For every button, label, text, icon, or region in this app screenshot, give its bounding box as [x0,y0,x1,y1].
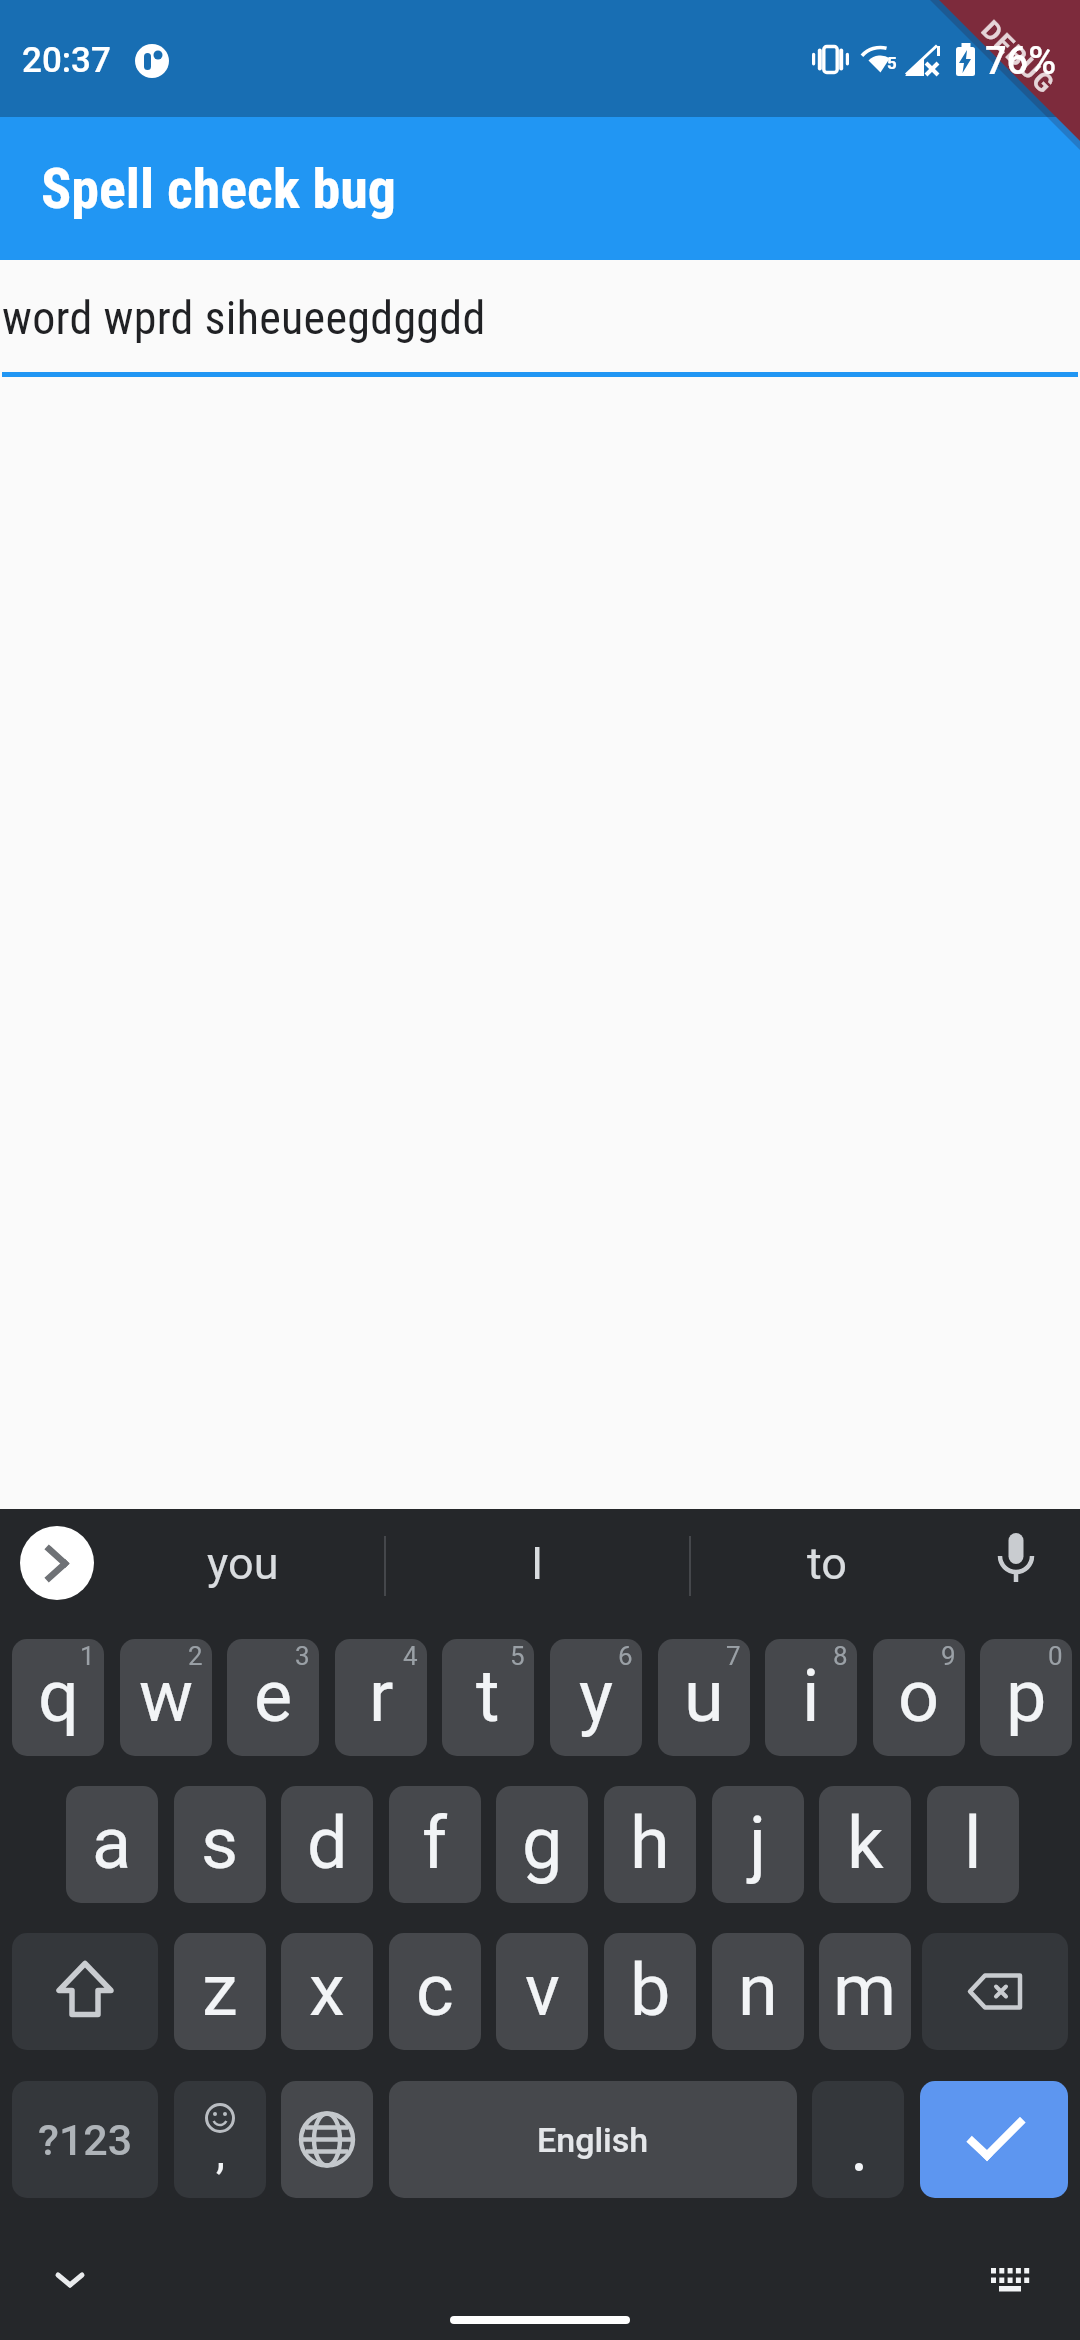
button[interactable] [922,1933,1068,2050]
staticText: a [92,1801,132,1885]
button[interactable]: w [120,1639,212,1756]
staticText: 8 [833,1641,848,1671]
staticText: c [416,1948,454,2032]
staticText: s [201,1801,239,1885]
staticText: n [738,1948,778,2032]
staticText: , [216,2125,226,2179]
staticText: 4 [403,1641,418,1671]
button[interactable]: v [496,1933,588,2050]
button[interactable] [920,2081,1068,2198]
button[interactable]: x [281,1933,373,2050]
staticText: e [254,1654,293,1738]
button[interactable]: l [927,1786,1019,1903]
button[interactable]: ?123 [12,2081,158,2198]
button[interactable] [812,2081,904,2198]
staticText: 2 [188,1641,203,1671]
staticText: g [522,1801,563,1885]
staticText: you [207,1537,279,1590]
staticText: Spell check bug [41,156,397,222]
staticText: x [309,1948,345,2032]
staticText: ?123 [38,2115,133,2165]
button[interactable]: to [717,1530,937,1596]
button[interactable]: h [604,1786,696,1903]
button[interactable]: , [174,2081,266,2198]
button[interactable]: y [550,1639,642,1756]
button[interactable] [988,2264,1034,2296]
button[interactable]: i [765,1639,857,1756]
button[interactable]: e [227,1639,319,1756]
staticText: 3 [295,1641,310,1671]
staticText: v [525,1948,560,2032]
button[interactable]: you [133,1530,353,1596]
button[interactable] [281,2081,373,2198]
button[interactable]: q [12,1639,104,1756]
staticText: o [898,1654,940,1738]
staticText: z [202,1948,238,2032]
button[interactable] [40,2255,100,2305]
staticText: word wprd siheueegdggdd [2,291,486,345]
staticText: y [579,1654,614,1738]
button[interactable]: z [174,1933,266,2050]
staticText: I [531,1537,544,1590]
staticText: English [537,2120,649,2160]
button[interactable]: o [873,1639,965,1756]
staticText: r [369,1654,394,1738]
button[interactable]: j [712,1786,804,1903]
staticText: 9 [941,1641,956,1671]
staticText: j [749,1801,767,1885]
staticText: 20:37 [22,40,111,81]
staticText: m [833,1948,897,2032]
staticText: 6 [618,1641,633,1671]
button[interactable] [20,1526,94,1600]
button[interactable]: English [389,2081,797,2198]
staticText: u [684,1654,724,1738]
staticText: i [802,1654,820,1738]
staticText: 7 [726,1641,741,1671]
button[interactable]: c [389,1933,481,2050]
staticText: 5 [510,1641,525,1671]
button[interactable]: g [496,1786,588,1903]
button[interactable]: t [442,1639,534,1756]
staticText: b [630,1948,671,2032]
staticText: DEBUG [976,15,1061,100]
button[interactable]: k [819,1786,911,1903]
button[interactable] [12,1933,158,2050]
staticText: h [630,1801,670,1885]
staticText: 0 [1048,1641,1063,1671]
staticText: 5 [887,53,897,73]
staticText: 1 [80,1641,95,1671]
button[interactable]: I [427,1530,647,1596]
staticText: 76% [985,39,1057,84]
button[interactable]: d [281,1786,373,1903]
button[interactable]: s [174,1786,266,1903]
button[interactable]: f [389,1786,481,1903]
staticText: q [38,1654,79,1738]
button[interactable]: b [604,1933,696,2050]
button[interactable]: a [66,1786,158,1903]
button[interactable] [994,1533,1038,1587]
button[interactable]: u [658,1639,750,1756]
button[interactable]: p [980,1639,1072,1756]
button[interactable]: m [819,1933,911,2050]
staticText: k [847,1801,884,1885]
staticText: l [964,1801,982,1885]
staticText: w [139,1654,194,1738]
staticText: p [1006,1654,1047,1738]
button[interactable]: n [712,1933,804,2050]
button[interactable]: r [335,1639,427,1756]
staticText: f [422,1801,448,1885]
staticText: d [307,1801,348,1885]
staticText: t [476,1654,500,1738]
staticText: to [807,1537,847,1590]
